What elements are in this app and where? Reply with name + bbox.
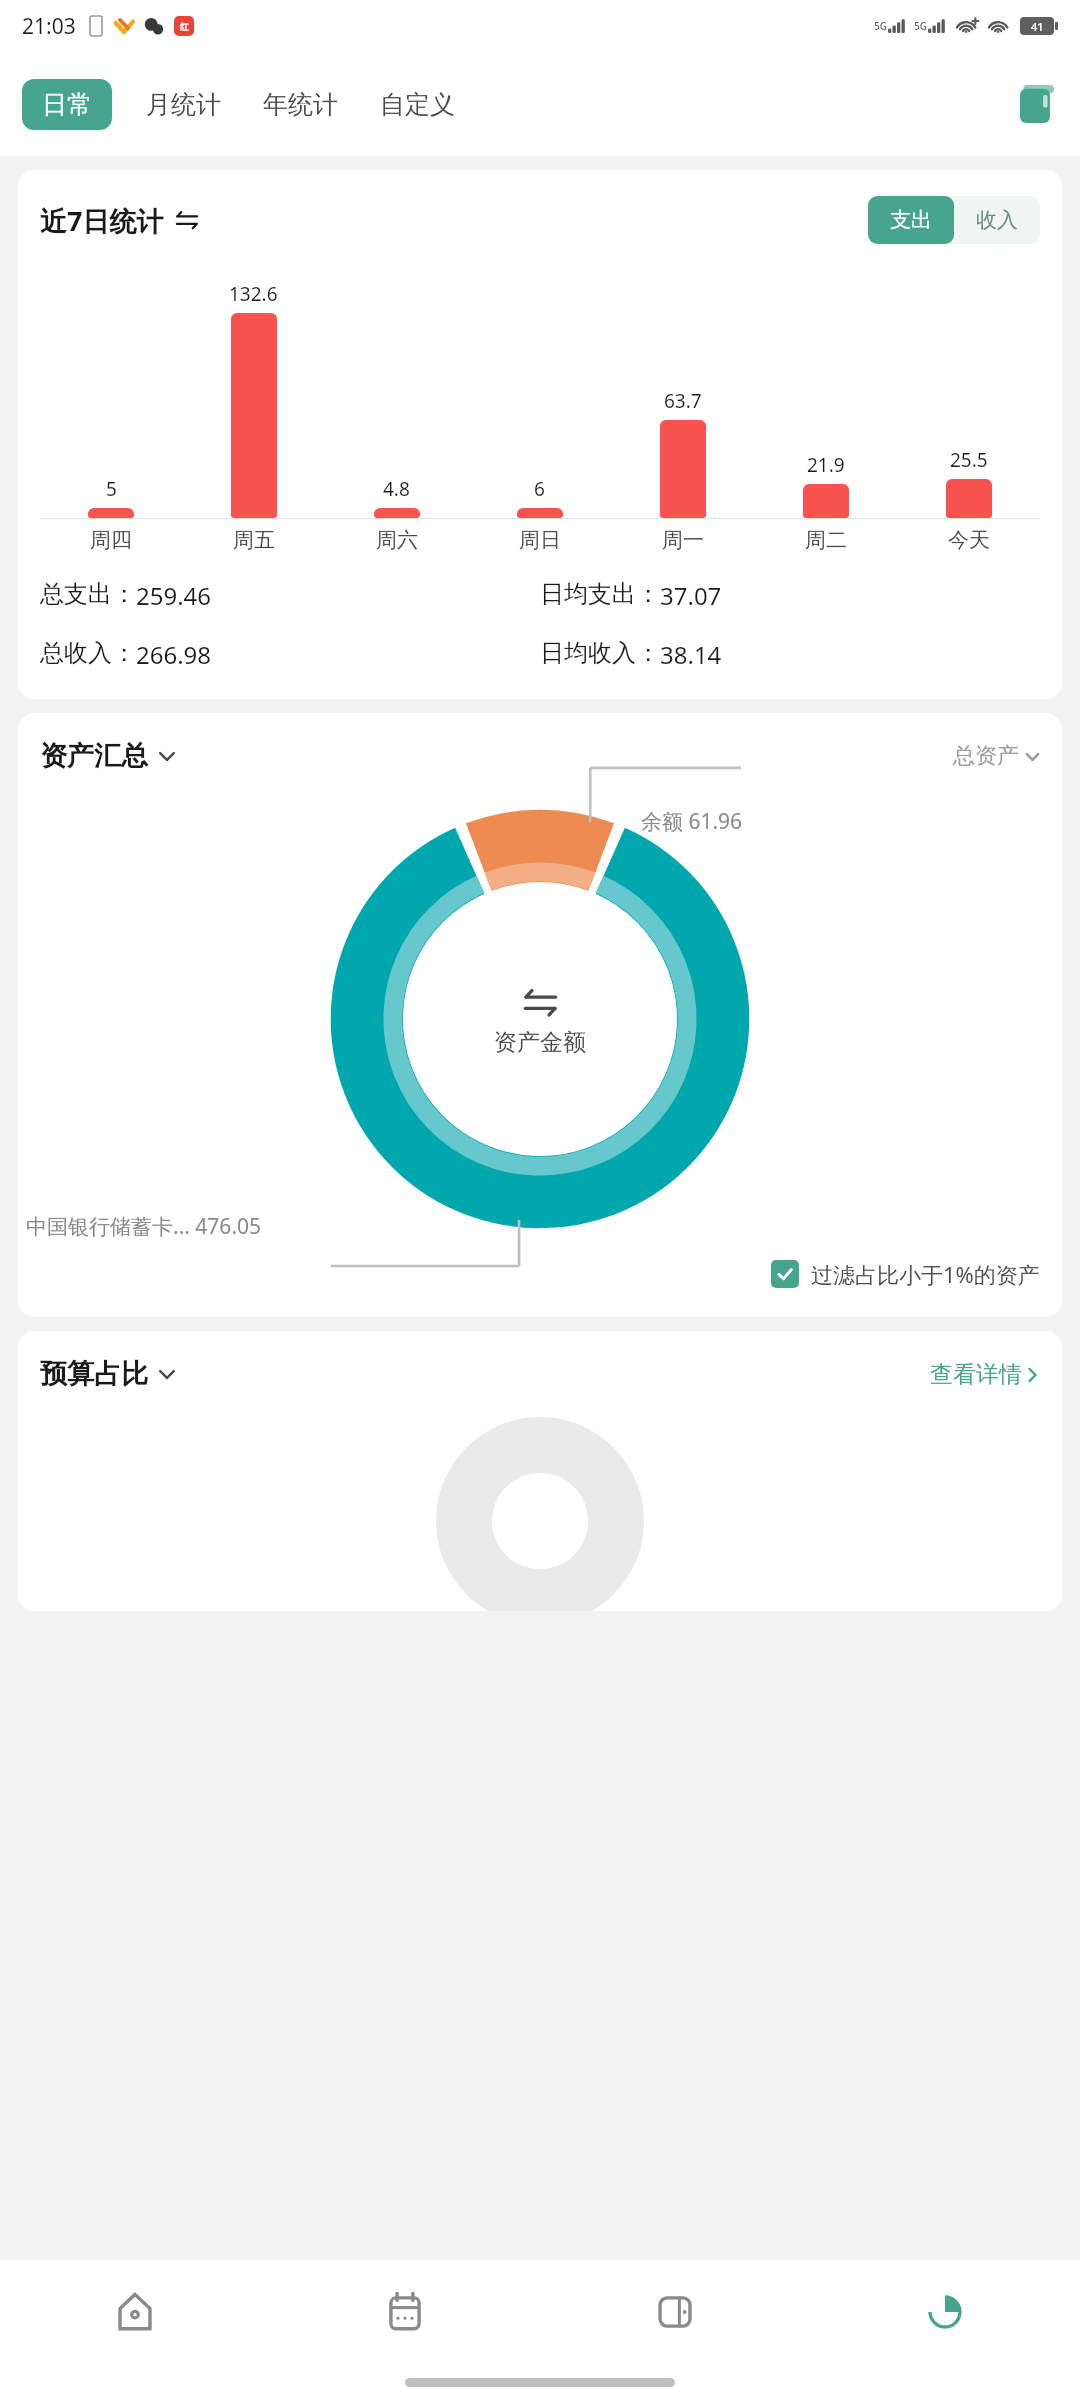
button[interactable]: 首页: [0, 2260, 270, 2364]
staticText: 38.14: [660, 638, 722, 671]
staticText: 预算占比: [40, 1357, 148, 1391]
staticText: 中国银行储蓄卡... 476.05: [26, 1212, 262, 1241]
button[interactable]: 总资产: [953, 742, 1040, 770]
staticText: 红: [180, 21, 189, 32]
button[interactable]: 收入: [954, 196, 1040, 244]
staticText: 周六: [376, 527, 418, 553]
staticText: 月统计: [146, 89, 221, 120]
staticText: 周二: [805, 527, 847, 553]
staticText: 今天: [948, 527, 990, 553]
staticText: 41: [1031, 19, 1044, 34]
button[interactable]: 自定义: [376, 79, 459, 130]
button[interactable]: 预算占比: [40, 1357, 176, 1391]
button[interactable]: 账本: [1014, 81, 1060, 127]
button[interactable]: 切换资产金额: [520, 982, 560, 1022]
staticText: 37.07: [660, 579, 722, 612]
staticText: 周五: [233, 527, 275, 553]
staticText: 259.46: [136, 579, 212, 612]
staticText: 日均收入：: [540, 638, 660, 668]
staticText: 5: [106, 476, 117, 502]
staticText: 4.8: [383, 476, 410, 502]
button[interactable]: 切换: [174, 207, 200, 233]
button[interactable]: 资产汇总: [40, 739, 176, 773]
staticText: 5G: [874, 19, 887, 33]
staticText: 总支出：: [40, 579, 136, 609]
staticText: 收入: [976, 207, 1018, 233]
button[interactable]: 过滤占比小于1%的资产: [771, 1259, 1040, 1289]
staticText: 6: [534, 476, 545, 502]
staticText: 支出: [890, 207, 932, 233]
staticText: 266.98: [136, 638, 212, 671]
staticText: 自定义: [380, 89, 455, 120]
button[interactable]: 查看详情: [930, 1360, 1040, 1389]
button[interactable]: 日常: [22, 79, 112, 130]
staticText: 资产金额: [494, 1028, 586, 1057]
staticText: 63.7: [664, 388, 702, 414]
staticText: 周四: [90, 527, 132, 553]
staticText: 余额 61.96: [641, 807, 743, 836]
staticText: 日均支出：: [540, 579, 660, 609]
staticText: 5G: [914, 19, 927, 33]
staticText: 资产汇总: [40, 739, 148, 773]
staticText: 日常: [42, 89, 92, 120]
staticText: 年统计: [263, 89, 338, 120]
staticText: 近7日统计: [40, 202, 164, 239]
staticText: 总资产: [953, 742, 1019, 770]
staticText: 查看详情: [930, 1360, 1022, 1389]
staticText: 132.6: [229, 281, 278, 307]
button[interactable]: 统计: [810, 2260, 1080, 2364]
staticText: 21.9: [807, 452, 845, 478]
button[interactable]: 钱包: [540, 2260, 810, 2364]
staticText: 21:03: [22, 12, 76, 41]
staticText: 25.5: [950, 447, 988, 473]
button[interactable]: 月统计: [142, 79, 225, 130]
staticText: 总收入：: [40, 638, 136, 668]
button[interactable]: 日历: [270, 2260, 540, 2364]
staticText: 过滤占比小于1%的资产: [811, 1259, 1040, 1289]
staticText: 周日: [519, 527, 561, 553]
staticText: 周一: [662, 527, 704, 553]
button[interactable]: 年统计: [259, 79, 342, 130]
button[interactable]: 支出: [868, 196, 954, 244]
